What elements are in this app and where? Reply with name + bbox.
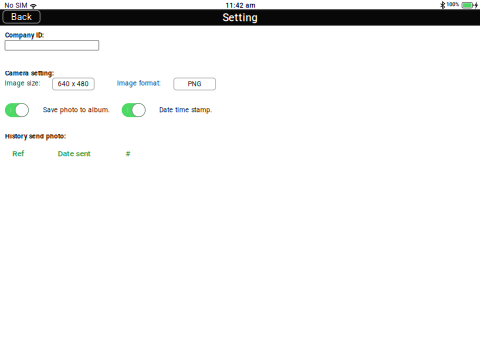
staticText: Ref <box>12 149 24 158</box>
staticText: 11:42 am <box>225 2 255 9</box>
staticText: Camera setting: <box>5 69 54 77</box>
staticText: Save photo to album. <box>43 106 110 114</box>
staticText: Image size: <box>5 79 41 87</box>
staticText: # <box>125 149 130 158</box>
staticText: Image format: <box>117 79 161 87</box>
button[interactable]: Company ID text field <box>5 40 99 50</box>
staticText: Setting <box>222 11 257 24</box>
staticText: PNG <box>188 80 202 88</box>
button[interactable]: 640 x 480 <box>52 78 94 90</box>
staticText: Date time stamp. <box>159 106 212 114</box>
button[interactable]: PNG <box>174 78 216 90</box>
button[interactable]: Save photo to album <box>5 103 29 117</box>
staticText: Back <box>11 11 32 22</box>
staticText: History send photo: <box>5 132 66 140</box>
button[interactable]: Back <box>3 10 40 23</box>
staticText: Company ID: <box>5 31 44 39</box>
button[interactable]: Date time stamp <box>122 103 145 117</box>
staticText: 640 x 480 <box>58 80 89 88</box>
staticText: 100% <box>446 1 459 8</box>
staticText: Date sent <box>58 149 91 158</box>
staticText: No SIM <box>4 2 27 9</box>
